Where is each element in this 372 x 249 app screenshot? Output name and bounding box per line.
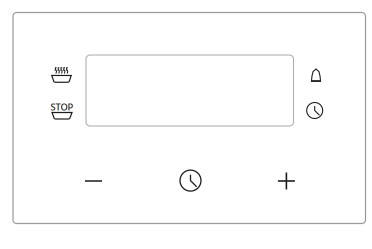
button[interactable]: Decrease <box>71 161 115 201</box>
button[interactable]: Set time <box>168 161 212 201</box>
staticText: STOP <box>50 101 73 113</box>
button[interactable]: Start cooking <box>42 58 80 92</box>
button[interactable]: Stop cooking <box>43 94 81 128</box>
button[interactable]: Alarm <box>301 61 331 89</box>
button[interactable]: Increase <box>264 161 308 201</box>
button[interactable]: Timer <box>300 96 330 124</box>
